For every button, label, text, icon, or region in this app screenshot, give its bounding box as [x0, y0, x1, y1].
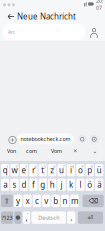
staticText: ⌫	[89, 197, 98, 205]
staticText: 4	[34, 164, 36, 169]
button[interactable]: com	[20, 146, 43, 156]
button[interactable]: u	[57, 164, 66, 176]
staticText: y	[16, 196, 20, 206]
staticText: x	[25, 196, 29, 206]
staticText: h	[50, 179, 55, 190]
button[interactable]: y	[14, 195, 22, 207]
staticText: Von	[7, 147, 16, 155]
staticText: c	[35, 196, 39, 206]
staticText: 20:07	[96, 0, 103, 11]
staticText: u	[59, 165, 64, 175]
button[interactable]: v	[42, 195, 50, 207]
staticText: z	[50, 165, 54, 175]
staticText: i	[70, 165, 72, 175]
button[interactable]: Settings	[90, 135, 98, 143]
staticText: 1	[6, 164, 8, 169]
button[interactable]: Incognito	[78, 135, 86, 143]
button[interactable]: k	[67, 178, 75, 191]
staticText: o	[78, 165, 83, 175]
staticText: p	[87, 165, 92, 175]
staticText: b	[53, 196, 58, 206]
button[interactable]: a	[1, 178, 9, 191]
staticText: °	[27, 211, 29, 217]
staticText: Vom	[51, 147, 62, 155]
staticText: .	[70, 212, 72, 223]
button[interactable]: Enter	[78, 211, 103, 224]
staticText: ö	[87, 179, 92, 190]
staticText: com	[26, 147, 37, 155]
button[interactable]: Emoji	[14, 211, 21, 224]
staticText: t	[41, 165, 44, 175]
button[interactable]: x	[23, 195, 32, 207]
staticText: An:	[8, 28, 15, 36]
staticText: ✕	[73, 148, 77, 154]
staticText: w	[12, 165, 18, 175]
staticText: ⏎	[87, 214, 93, 221]
staticText: 3	[25, 164, 27, 169]
button[interactable]: ?123	[1, 211, 13, 224]
button[interactable]: p	[86, 164, 94, 176]
button[interactable]: z	[48, 164, 56, 176]
staticText: Neue Nachricht	[17, 11, 76, 22]
staticText: f	[32, 179, 35, 190]
button[interactable]: Add	[7, 134, 18, 145]
button[interactable]: ü	[95, 164, 103, 176]
button[interactable]: e	[20, 164, 28, 176]
staticText: g	[40, 179, 45, 190]
staticText: notebookcheck.com	[20, 135, 70, 143]
button[interactable]: i	[67, 164, 75, 176]
staticText: ⌄	[92, 147, 98, 155]
button[interactable]: o	[76, 164, 84, 176]
staticText: Deutsch	[38, 214, 59, 221]
button[interactable]: Choose contacts	[87, 26, 101, 38]
button[interactable]: Vom	[45, 146, 68, 156]
button[interactable]: Shift	[1, 195, 13, 207]
button[interactable]: .	[67, 211, 75, 224]
button[interactable]: Deutsch	[31, 211, 66, 224]
staticText: 6	[53, 164, 55, 169]
button[interactable]: An:	[3, 24, 85, 40]
staticText: ü	[97, 165, 102, 175]
staticText: 7	[63, 164, 65, 169]
button[interactable]: j	[57, 178, 66, 191]
button[interactable]: b	[51, 195, 60, 207]
staticText: m	[71, 196, 78, 206]
button[interactable]: Back	[2, 10, 19, 23]
staticText: r	[32, 165, 35, 175]
button[interactable]: d	[20, 178, 28, 191]
staticText: n	[63, 196, 68, 206]
staticText: k	[69, 179, 73, 190]
button[interactable]: ,	[23, 211, 30, 224]
button[interactable]: h	[48, 178, 56, 191]
button[interactable]: s	[10, 178, 19, 191]
staticText: ⇧	[4, 197, 10, 205]
staticText: v	[44, 196, 48, 206]
staticText: ?123	[2, 214, 13, 221]
button[interactable]: notebookcheck.com	[17, 133, 74, 144]
staticText: d	[21, 179, 26, 190]
staticText: 9	[81, 164, 83, 169]
staticText: 8	[72, 164, 74, 169]
button[interactable]: q	[1, 164, 9, 176]
button[interactable]: m	[70, 195, 79, 207]
button[interactable]: f	[29, 178, 37, 191]
staticText: q	[3, 165, 8, 175]
staticText: j	[61, 179, 63, 190]
button[interactable]: w	[10, 164, 19, 176]
button[interactable]: l	[76, 178, 84, 191]
button[interactable]: r	[29, 164, 37, 176]
button[interactable]: n	[61, 195, 69, 207]
button[interactable]: g	[39, 178, 47, 191]
staticText: 2	[15, 164, 17, 169]
button[interactable]: t	[39, 164, 47, 176]
staticText: s	[13, 179, 17, 190]
button[interactable]: Von	[0, 146, 23, 156]
staticText: a	[3, 179, 7, 190]
button[interactable]: c	[33, 195, 41, 207]
button[interactable]: ä	[95, 178, 103, 191]
staticText: ä	[97, 179, 101, 190]
button[interactable]: More suggestions	[89, 146, 101, 156]
button[interactable]: Close suggestions	[69, 146, 81, 156]
button[interactable]: Backspace	[83, 195, 104, 207]
button[interactable]: ö	[86, 178, 94, 191]
